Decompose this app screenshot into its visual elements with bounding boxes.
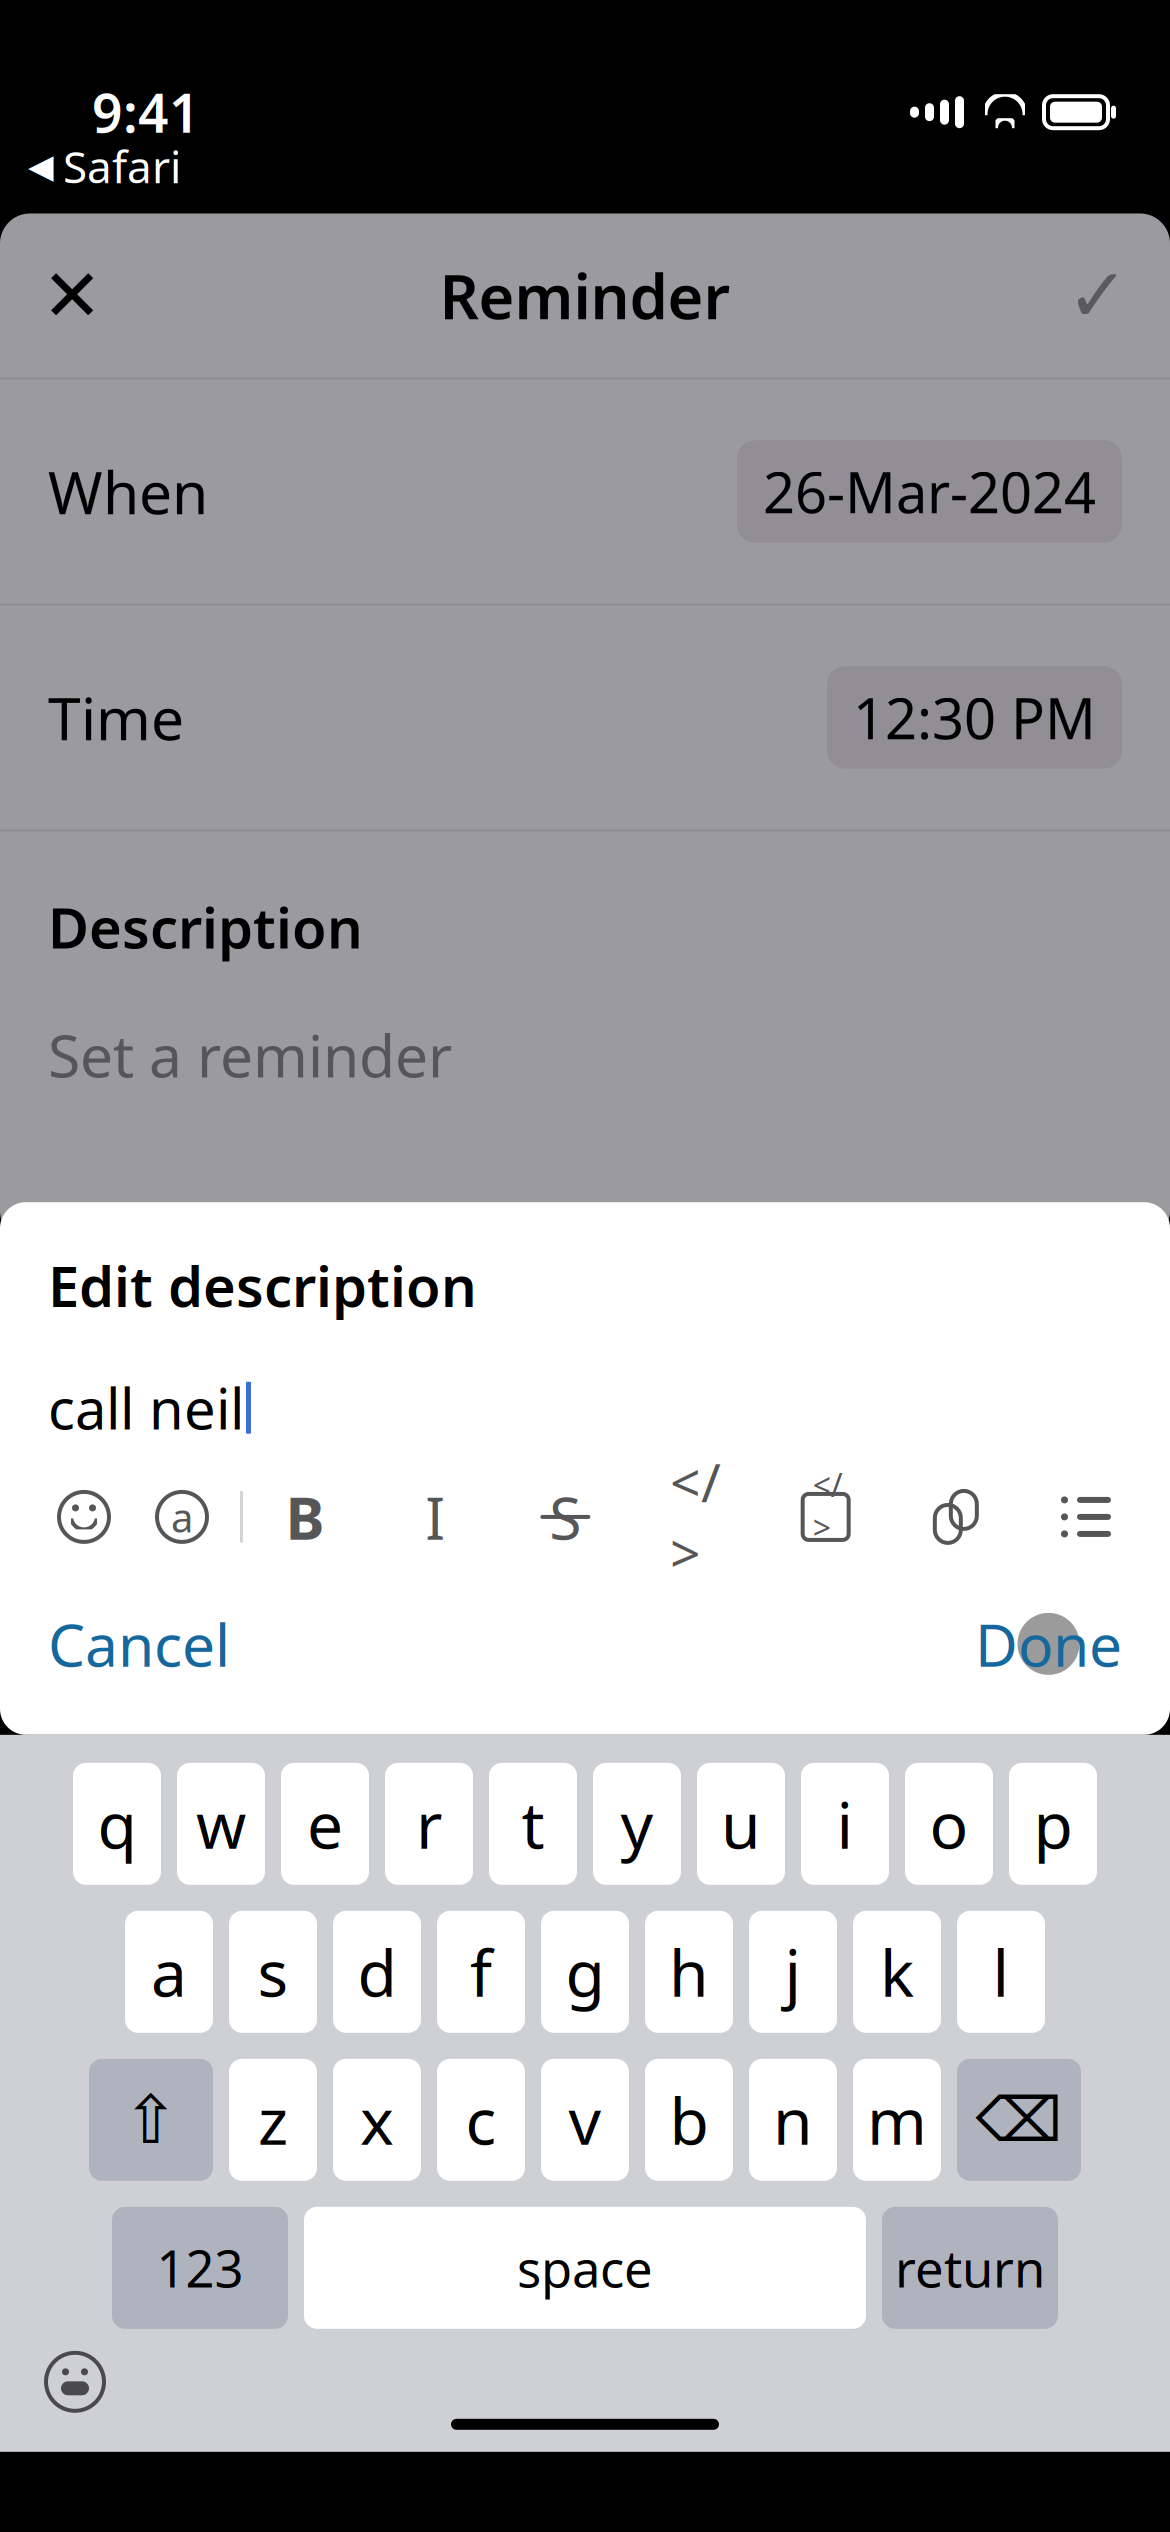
staticText: Set a reminder	[48, 1016, 452, 1094]
staticText: b	[669, 2077, 708, 2162]
button[interactable]: Emoji	[48, 1481, 120, 1553]
staticText: q	[97, 1781, 136, 1866]
button[interactable]: t	[489, 1763, 577, 1885]
staticText: x	[360, 2077, 394, 2162]
button[interactable]: m	[853, 2059, 941, 2181]
staticText: Reminder	[439, 255, 730, 336]
staticText: Done	[975, 1605, 1122, 1683]
button[interactable]: r	[385, 1763, 473, 1885]
staticText: I	[425, 1478, 445, 1556]
staticText: Cancel	[48, 1605, 230, 1683]
staticText: w	[196, 1781, 246, 1866]
staticText: Edit description	[48, 1248, 477, 1323]
button[interactable]: Italic	[399, 1481, 471, 1553]
button[interactable]: Code block	[790, 1481, 862, 1553]
staticText: return	[895, 2234, 1045, 2301]
staticText: o	[929, 1781, 968, 1866]
button[interactable]: e	[281, 1763, 369, 1885]
staticText: y	[620, 1781, 653, 1866]
button[interactable]: w	[177, 1763, 265, 1885]
button[interactable]: Done	[951, 1587, 1122, 1701]
staticText: ✕	[42, 255, 102, 336]
staticText: When	[48, 452, 208, 530]
button[interactable]: Close	[24, 247, 120, 343]
staticText: z	[258, 2077, 288, 2162]
button[interactable]: 123	[112, 2207, 288, 2329]
staticText: k	[880, 1929, 914, 2014]
button[interactable]: q	[73, 1763, 161, 1885]
button[interactable]: Cancel	[48, 1587, 254, 1701]
button[interactable]: u	[697, 1763, 785, 1885]
button[interactable]: p	[1009, 1763, 1097, 1885]
button[interactable]: return	[882, 2207, 1058, 2329]
button[interactable]: Bold	[269, 1481, 341, 1553]
staticText: Description	[48, 889, 363, 964]
button[interactable]: i	[801, 1763, 889, 1885]
staticText: h	[669, 1929, 709, 2014]
button[interactable]: y	[593, 1763, 681, 1885]
staticText: f	[470, 1929, 492, 2014]
staticText: t	[521, 1781, 544, 1866]
staticText: e	[307, 1781, 343, 1866]
staticText: ⌫	[975, 2085, 1062, 2155]
staticText: Safari	[63, 137, 181, 195]
button[interactable]: a	[125, 1911, 213, 2033]
staticText: l	[992, 1929, 1009, 2014]
staticText: i	[836, 1781, 853, 1866]
staticText: B	[285, 1478, 324, 1556]
button[interactable]: b	[645, 2059, 733, 2181]
staticText: a	[151, 1929, 187, 2014]
staticText: space	[517, 2234, 653, 2301]
button[interactable]: Bulleted list	[1050, 1481, 1122, 1553]
staticText: 9:41	[92, 77, 200, 148]
button[interactable]: f	[437, 1911, 525, 2033]
staticText: 123	[156, 2234, 243, 2301]
staticText: a	[171, 1490, 193, 1543]
staticText: ◀	[28, 147, 54, 185]
staticText: r	[416, 1781, 442, 1866]
button[interactable]: c	[437, 2059, 525, 2181]
staticText: </>	[813, 1463, 843, 1548]
staticText: m	[867, 2077, 927, 2162]
button[interactable]: ⇧	[89, 2059, 213, 2181]
button[interactable]: k	[853, 1911, 941, 2033]
button[interactable]: d	[333, 1911, 421, 2033]
button[interactable]: Save	[1050, 247, 1146, 343]
button[interactable]: Code	[659, 1481, 731, 1553]
staticText: j	[784, 1929, 801, 2014]
staticText: v	[568, 2077, 601, 2162]
staticText: Time	[48, 678, 184, 756]
button[interactable]: When	[0, 379, 1170, 603]
button[interactable]: x	[333, 2059, 421, 2181]
button[interactable]: Time	[0, 605, 1170, 829]
button[interactable]: g	[541, 1911, 629, 2033]
button[interactable]: Mention	[146, 1481, 218, 1553]
button[interactable]: v	[541, 2059, 629, 2181]
button[interactable]: Link	[920, 1481, 992, 1553]
staticText: n	[773, 2077, 813, 2162]
staticText: </>	[670, 1446, 721, 1588]
staticText: S	[549, 1478, 581, 1556]
button[interactable]: s	[229, 1911, 317, 2033]
staticText: 12:30 PM	[853, 680, 1096, 755]
staticText: ⇧	[123, 2082, 179, 2158]
staticText: u	[721, 1781, 761, 1866]
staticText: s	[257, 1929, 288, 2014]
button[interactable]: space	[304, 2207, 866, 2329]
staticText: call neil	[48, 1370, 244, 1445]
button[interactable]: h	[645, 1911, 733, 2033]
button[interactable]: Emoji keyboard	[46, 2353, 104, 2411]
staticText: c	[465, 2077, 496, 2162]
button[interactable]: ⌫	[957, 2059, 1081, 2181]
button[interactable]: l	[957, 1911, 1045, 2033]
staticText: 26-Mar-2024	[763, 454, 1096, 529]
button[interactable]: o	[905, 1763, 993, 1885]
staticText: d	[357, 1929, 396, 2014]
button[interactable]: Strikethrough	[529, 1481, 601, 1553]
staticText: ✓	[1066, 253, 1129, 338]
button[interactable]: z	[229, 2059, 317, 2181]
staticText: g	[565, 1929, 604, 2014]
button[interactable]: j	[749, 1911, 837, 2033]
staticText: p	[1033, 1781, 1072, 1866]
button[interactable]: n	[749, 2059, 837, 2181]
